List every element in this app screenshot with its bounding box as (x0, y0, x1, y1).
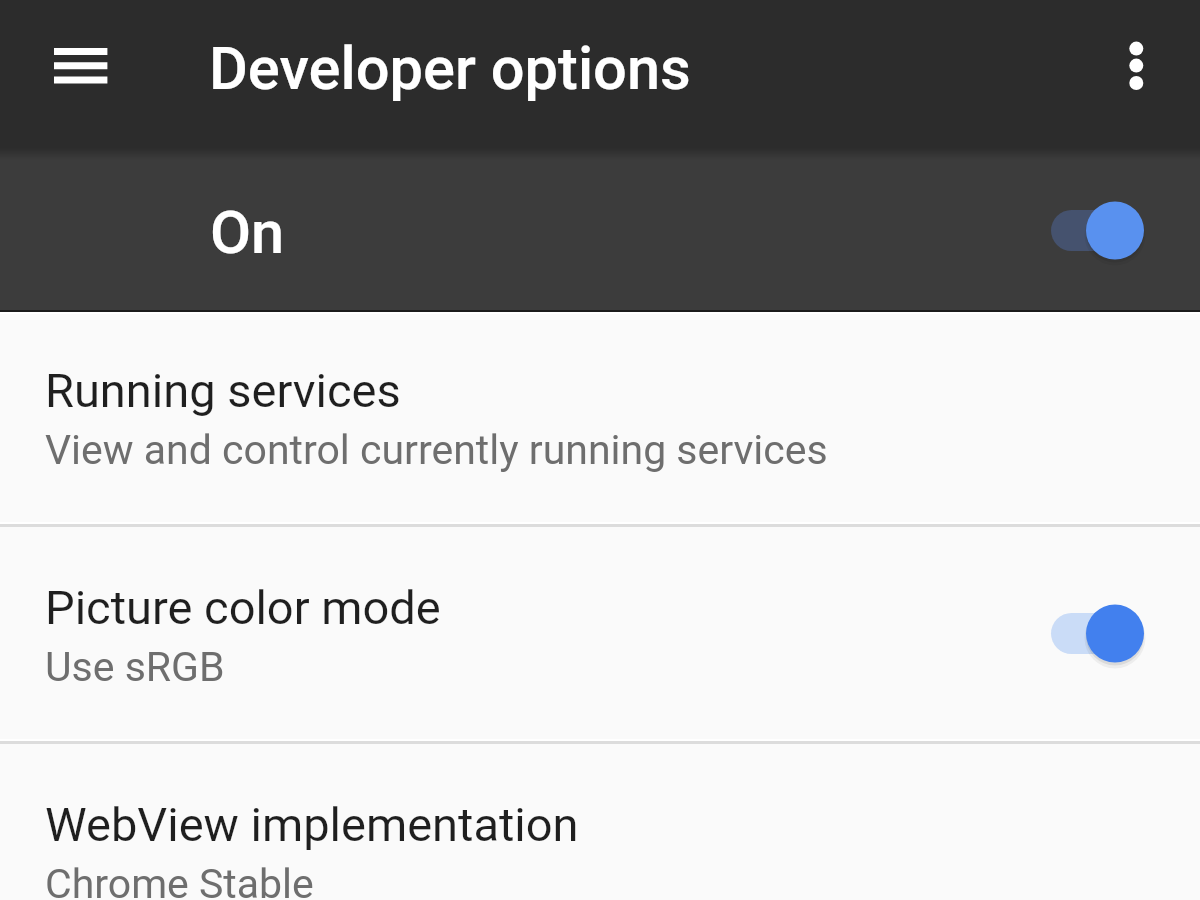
button[interactable]: More options (1078, 20, 1183, 128)
button[interactable]: Running services (0, 310, 1200, 524)
button[interactable]: Open navigation drawer (12, 12, 120, 120)
staticText: Developer options (209, 34, 691, 104)
staticText: Picture color mode (45, 580, 441, 635)
staticText: Chrome Stable (45, 860, 314, 900)
staticText: Use sRGB (45, 643, 225, 691)
button[interactable]: WebView implementation (0, 743, 1200, 900)
staticText: Running services (45, 363, 401, 418)
staticText: View and control currently running servi… (45, 426, 828, 474)
button[interactable]: Picture color mode (0, 526, 1200, 741)
button[interactable]: On (0, 148, 1200, 310)
staticText: WebView implementation (45, 797, 579, 852)
staticText: On (210, 198, 285, 268)
button[interactable]: Toggle developer options (1051, 200, 1144, 261)
button[interactable]: Toggle picture color mode (1051, 603, 1144, 664)
